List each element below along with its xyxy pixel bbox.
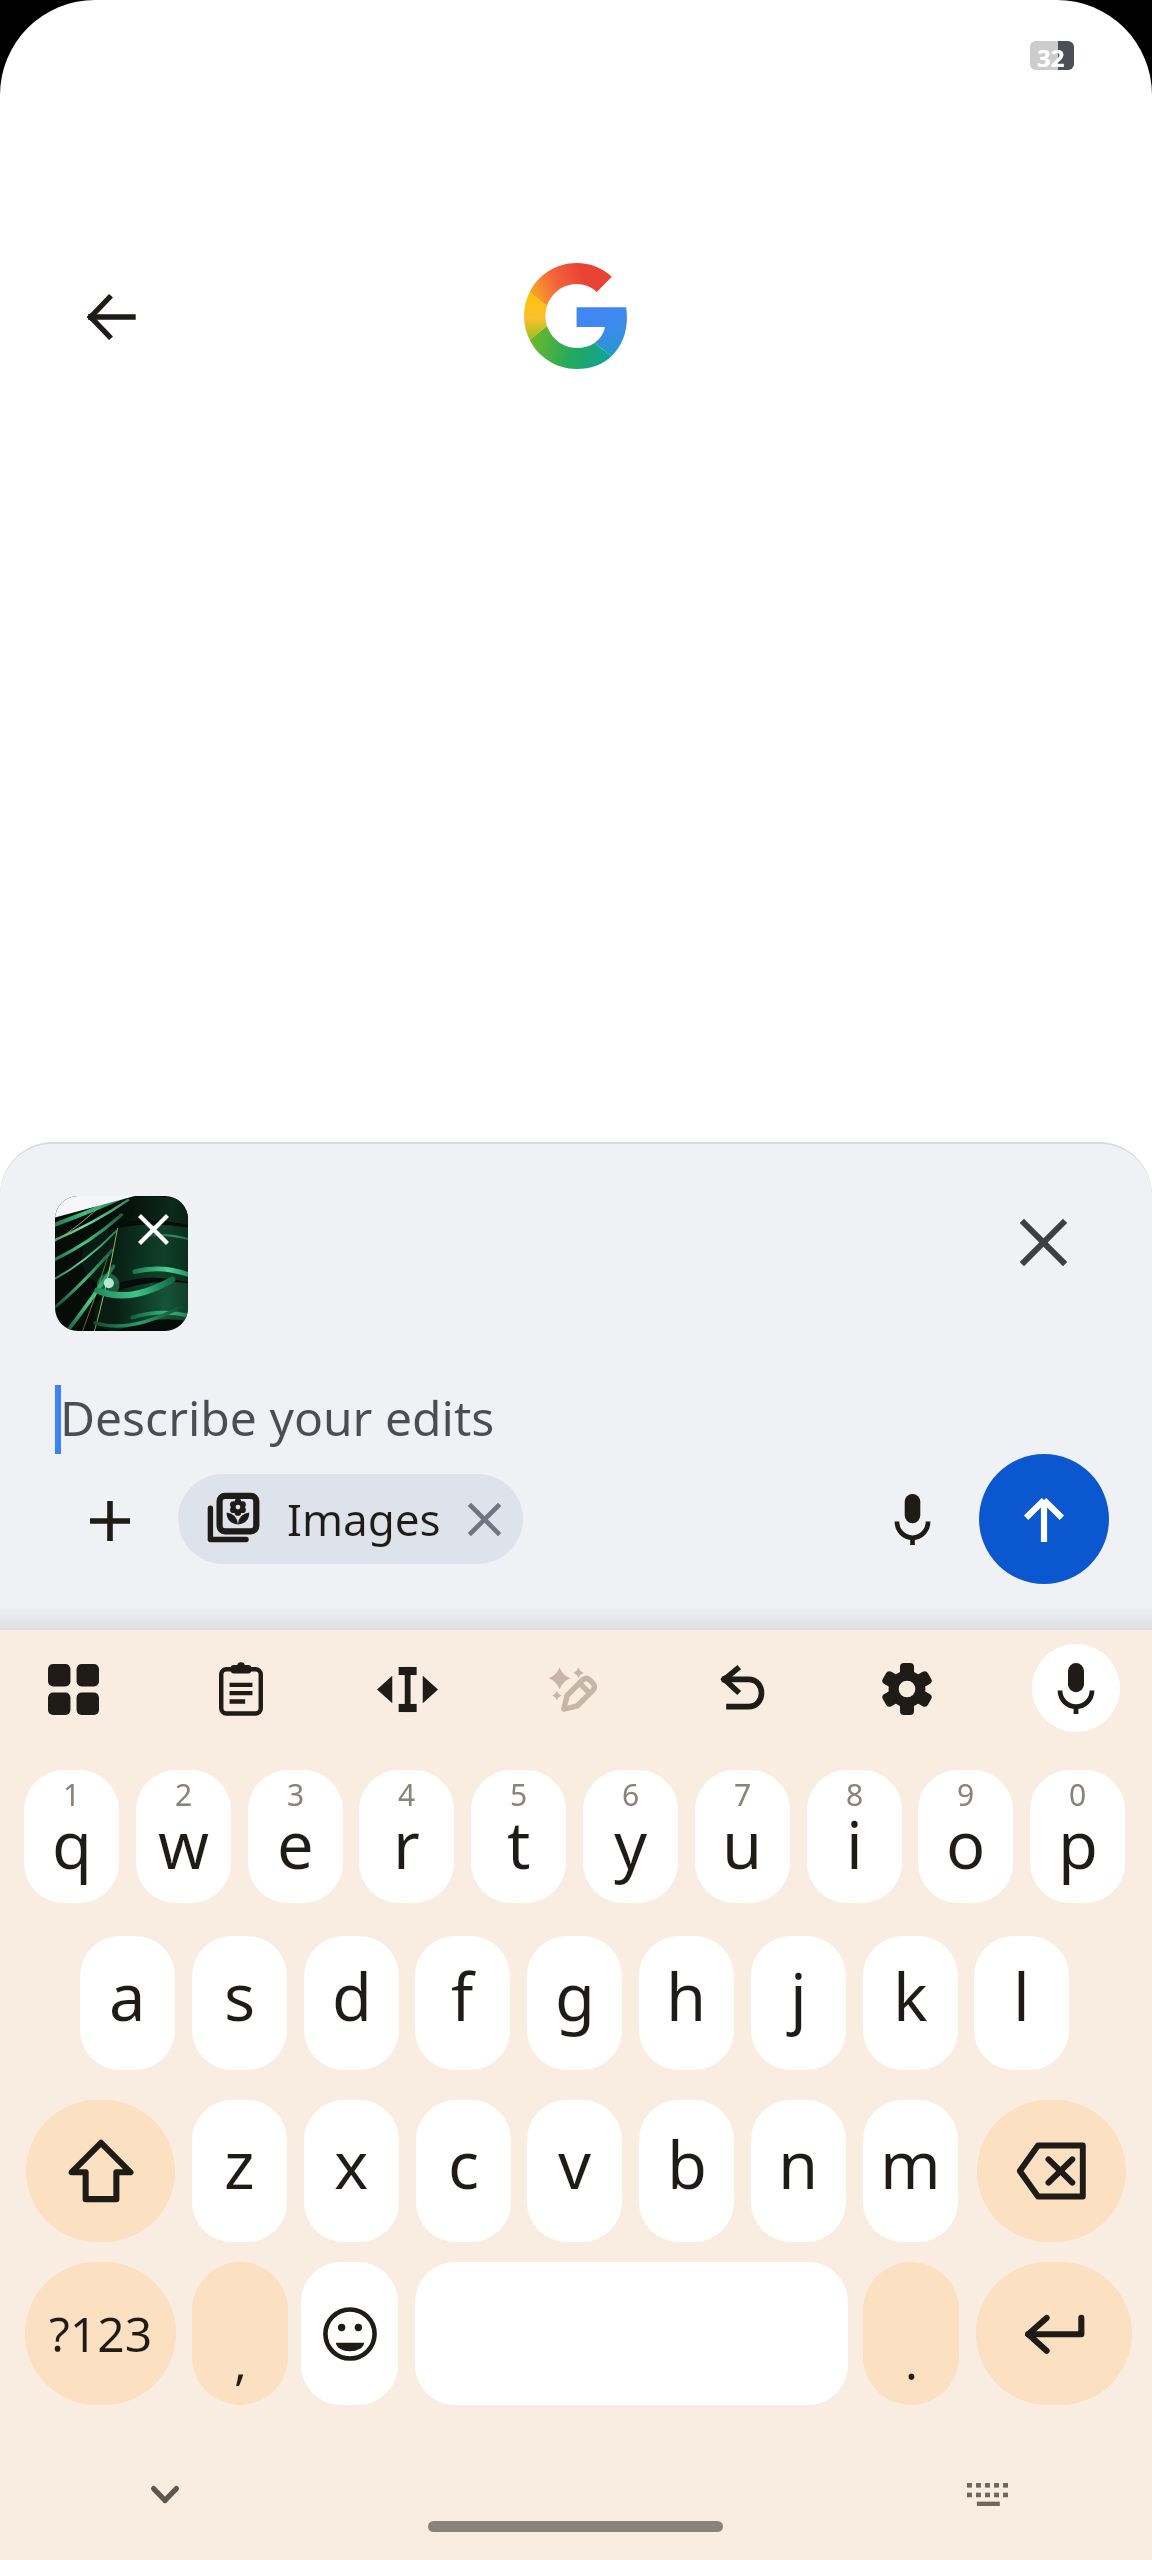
staticText: 4 xyxy=(398,1774,416,1815)
staticText: c xyxy=(448,2120,480,2209)
staticText: x xyxy=(334,2120,369,2209)
button[interactable]: Clipboard xyxy=(193,1641,289,1737)
button[interactable]: 5 xyxy=(471,1770,566,1903)
button[interactable]: Images xyxy=(178,1474,523,1564)
button[interactable]: g xyxy=(527,1936,622,2070)
button[interactable]: Shift xyxy=(26,2100,175,2242)
staticText: 8 xyxy=(846,1774,864,1815)
button[interactable]: Attached image xyxy=(55,1196,188,1331)
staticText: 9 xyxy=(957,1774,975,1815)
button[interactable]: m xyxy=(863,2100,958,2242)
button[interactable]: Rewrite xyxy=(524,1641,620,1737)
button[interactable]: 7 xyxy=(695,1770,790,1903)
button[interactable]: d xyxy=(304,1936,399,2070)
staticText: w xyxy=(158,1800,210,1889)
staticText: k xyxy=(893,1952,928,2041)
staticText: o xyxy=(946,1800,986,1889)
staticText: 1 xyxy=(63,1774,81,1815)
staticText: l xyxy=(1013,1952,1030,2041)
staticText: 32 xyxy=(1037,41,1065,70)
staticText: z xyxy=(224,2120,255,2209)
staticText: u xyxy=(722,1800,763,1889)
staticText: 5 xyxy=(510,1774,528,1815)
staticText: r xyxy=(393,1800,420,1889)
button[interactable]: Apps xyxy=(25,1641,121,1737)
staticText: 2 xyxy=(175,1774,193,1815)
staticText: Images xyxy=(287,1489,441,1549)
button[interactable] xyxy=(415,2262,848,2405)
staticText: Describe your edits xyxy=(60,1385,495,1450)
staticText: 3 xyxy=(287,1774,305,1815)
staticText: m xyxy=(880,2120,941,2209)
button[interactable]: 9 xyxy=(918,1770,1013,1903)
staticText: b xyxy=(667,2120,707,2209)
staticText: q xyxy=(52,1800,92,1889)
button[interactable]: Describe your edits xyxy=(52,1372,1092,1468)
button[interactable]: 8 xyxy=(807,1770,902,1903)
button[interactable]: v xyxy=(527,2100,622,2242)
button[interactable]: a xyxy=(80,1936,175,2070)
button[interactable]: Period xyxy=(863,2262,959,2405)
button[interactable]: 4 xyxy=(359,1770,454,1903)
button[interactable]: Text cursor xyxy=(359,1641,455,1737)
staticText: s xyxy=(224,1952,256,2041)
button[interactable]: Backspace xyxy=(977,2100,1126,2242)
staticText: j xyxy=(790,1952,807,2041)
staticText: . xyxy=(905,2329,918,2394)
button[interactable]: 3 xyxy=(248,1770,343,1903)
button[interactable]: j xyxy=(751,1936,846,2070)
button[interactable]: k xyxy=(863,1936,958,2070)
button[interactable]: s xyxy=(192,1936,287,2070)
button[interactable]: 0 xyxy=(1030,1770,1125,1903)
staticText: p xyxy=(1058,1800,1098,1889)
button[interactable]: Symbols xyxy=(25,2262,176,2405)
button[interactable]: Enter xyxy=(976,2262,1132,2405)
staticText: g xyxy=(555,1952,595,2041)
button[interactable]: Remove image xyxy=(129,1205,178,1254)
button[interactable]: l xyxy=(974,1936,1069,2070)
staticText: 6 xyxy=(622,1774,640,1815)
staticText: y xyxy=(614,1800,648,1889)
button[interactable]: Close xyxy=(991,1190,1095,1294)
button[interactable]: Settings xyxy=(859,1641,955,1737)
button[interactable]: Comma xyxy=(192,2262,288,2405)
button[interactable]: c xyxy=(416,2100,511,2242)
button[interactable] xyxy=(301,2262,398,2405)
button[interactable]: 6 xyxy=(583,1770,678,1903)
button[interactable]: h xyxy=(639,1936,734,2070)
button[interactable]: Send xyxy=(979,1454,1109,1584)
button[interactable]: b xyxy=(639,2100,734,2242)
staticText: e xyxy=(277,1800,314,1889)
staticText: ?123 xyxy=(49,2301,153,2366)
button[interactable]: z xyxy=(192,2100,287,2242)
button[interactable]: n xyxy=(751,2100,846,2242)
staticText: , xyxy=(234,2329,247,2394)
staticText: d xyxy=(332,1952,372,2041)
button[interactable]: Switch keyboard xyxy=(952,2459,1022,2529)
staticText: t xyxy=(507,1800,531,1889)
button[interactable]: Voice input xyxy=(865,1471,960,1566)
staticText: n xyxy=(778,2120,819,2209)
button[interactable]: Back xyxy=(62,269,158,365)
staticText: i xyxy=(846,1800,863,1889)
button[interactable]: Hide keyboard xyxy=(130,2459,200,2529)
button[interactable]: 2 xyxy=(136,1770,231,1903)
staticText: 0 xyxy=(1069,1774,1087,1815)
staticText: a xyxy=(109,1952,146,2041)
button[interactable]: 1 xyxy=(24,1770,119,1903)
button[interactable]: x xyxy=(304,2100,399,2242)
button[interactable]: f xyxy=(415,1936,510,2070)
staticText: h xyxy=(666,1952,707,2041)
button[interactable]: Voice typing xyxy=(1032,1644,1120,1732)
button[interactable]: Add xyxy=(62,1473,157,1568)
staticText: v xyxy=(558,2120,592,2209)
button[interactable]: Undo xyxy=(694,1641,790,1737)
staticText: 7 xyxy=(734,1774,752,1815)
staticText: f xyxy=(451,1952,474,2041)
